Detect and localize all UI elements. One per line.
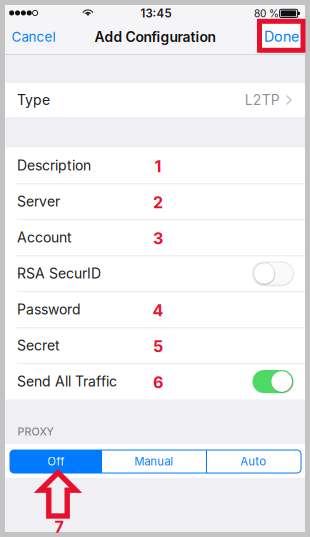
staticText: L2TP <box>245 91 280 108</box>
staticText: Type <box>17 91 50 108</box>
staticText: Add Configuration <box>94 29 215 45</box>
staticText: Manual <box>134 455 173 468</box>
staticText: 13:45 <box>140 6 171 20</box>
staticText: Auto <box>240 455 266 468</box>
staticText: Send All Traffic <box>17 373 117 390</box>
button[interactable]: Type <box>5 83 305 117</box>
button[interactable]: RSA SecurID <box>5 255 305 291</box>
button[interactable]: Cancel <box>11 24 55 50</box>
staticText: 4 <box>152 301 163 320</box>
staticText: PROXY <box>17 425 53 438</box>
staticText: 3 <box>153 229 163 248</box>
staticText: RSA SecurID <box>17 265 101 282</box>
button[interactable]: Server <box>5 183 305 219</box>
button[interactable]: Description <box>5 147 305 183</box>
button[interactable]: Send All Traffic <box>5 363 305 399</box>
staticText: 7 <box>54 517 63 537</box>
button[interactable]: Secret <box>5 327 305 363</box>
button[interactable]: Off <box>10 450 102 473</box>
staticText: 5 <box>153 337 163 356</box>
staticText: Description <box>17 157 91 174</box>
staticText: Done <box>264 28 299 45</box>
staticText: 80 % <box>254 7 279 20</box>
button[interactable]: Auto <box>206 450 301 473</box>
staticText: 2 <box>153 193 163 212</box>
staticText: Off <box>47 455 64 468</box>
button[interactable]: Account <box>5 219 305 255</box>
staticText: 1 <box>154 157 161 176</box>
staticText: Password <box>17 301 81 318</box>
staticText: Server <box>17 193 60 210</box>
button[interactable]: Done <box>265 23 299 49</box>
staticText: Cancel <box>11 29 55 45</box>
button[interactable]: Password <box>5 291 305 327</box>
staticText: 6 <box>153 373 163 392</box>
button[interactable]: Manual <box>102 450 206 473</box>
staticText: Secret <box>17 337 60 354</box>
staticText: Account <box>17 229 72 246</box>
